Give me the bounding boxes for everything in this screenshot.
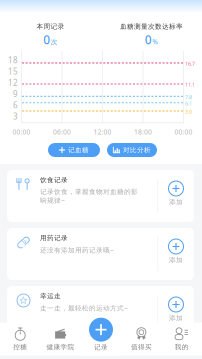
staticText: % <box>152 37 158 46</box>
staticText: 记录 <box>94 343 108 351</box>
button[interactable]: 我的 <box>162 322 202 355</box>
staticText: 18 <box>8 55 18 65</box>
staticText: 0 <box>43 32 50 47</box>
staticText: 7.8 <box>185 93 192 101</box>
staticText: 饮食记录 <box>40 176 68 184</box>
staticText: 本周记录 <box>36 22 64 31</box>
staticText: 走一走，最轻松的运动方式~ <box>40 304 128 313</box>
staticText: 06:00 <box>53 127 71 136</box>
staticText: 3 <box>13 111 18 122</box>
staticText: 11.1 <box>185 81 195 88</box>
button[interactable]: 用药记录 <box>7 228 194 280</box>
staticText: 我的 <box>175 343 189 351</box>
staticText: 值得买 <box>131 343 152 351</box>
staticText: 0 <box>145 32 152 47</box>
staticText: 次 <box>51 38 58 46</box>
staticText: 添加 <box>169 198 183 206</box>
staticText: 18:00 <box>134 127 152 136</box>
button[interactable]: 值得买 <box>121 322 162 355</box>
staticText: 健康学院 <box>47 343 75 351</box>
staticText: 控糖 <box>13 343 27 351</box>
staticText: 还没有添加用药记录哦~ <box>40 246 114 255</box>
staticText: 15 <box>8 66 18 77</box>
staticText: 记录饮食，掌握食物对血糖的影响规律~ <box>40 188 138 205</box>
staticText: 3.9 <box>185 108 192 115</box>
button[interactable]: 记血糖 <box>48 143 100 157</box>
button[interactable]: 记录 <box>81 314 121 354</box>
button[interactable]: 健康学院 <box>40 322 81 355</box>
button[interactable]: 饮食记录 <box>7 170 194 222</box>
staticText: 6.1 <box>185 100 192 107</box>
staticText: 9 <box>13 88 18 99</box>
staticText: 12 <box>8 77 18 88</box>
staticText: 用药记录 <box>40 234 68 242</box>
button[interactable]: 对比分析 <box>107 143 157 157</box>
staticText: 12:00 <box>93 127 111 136</box>
staticText: 记血糖 <box>68 146 89 154</box>
staticText: 血糖测量次数达标率 <box>120 22 183 31</box>
staticText: 添加 <box>169 314 183 322</box>
staticText: 添加 <box>169 256 183 264</box>
staticText: 00:00 <box>174 127 192 136</box>
staticText: 对比分析 <box>123 146 151 154</box>
button[interactable]: 控糖 <box>0 322 40 355</box>
button[interactable]: 幸运走 <box>7 286 194 338</box>
staticText: 00:00 <box>12 127 30 136</box>
staticText: 6 <box>13 100 18 110</box>
staticText: 幸运走 <box>40 292 61 300</box>
staticText: 16.7 <box>185 60 195 67</box>
